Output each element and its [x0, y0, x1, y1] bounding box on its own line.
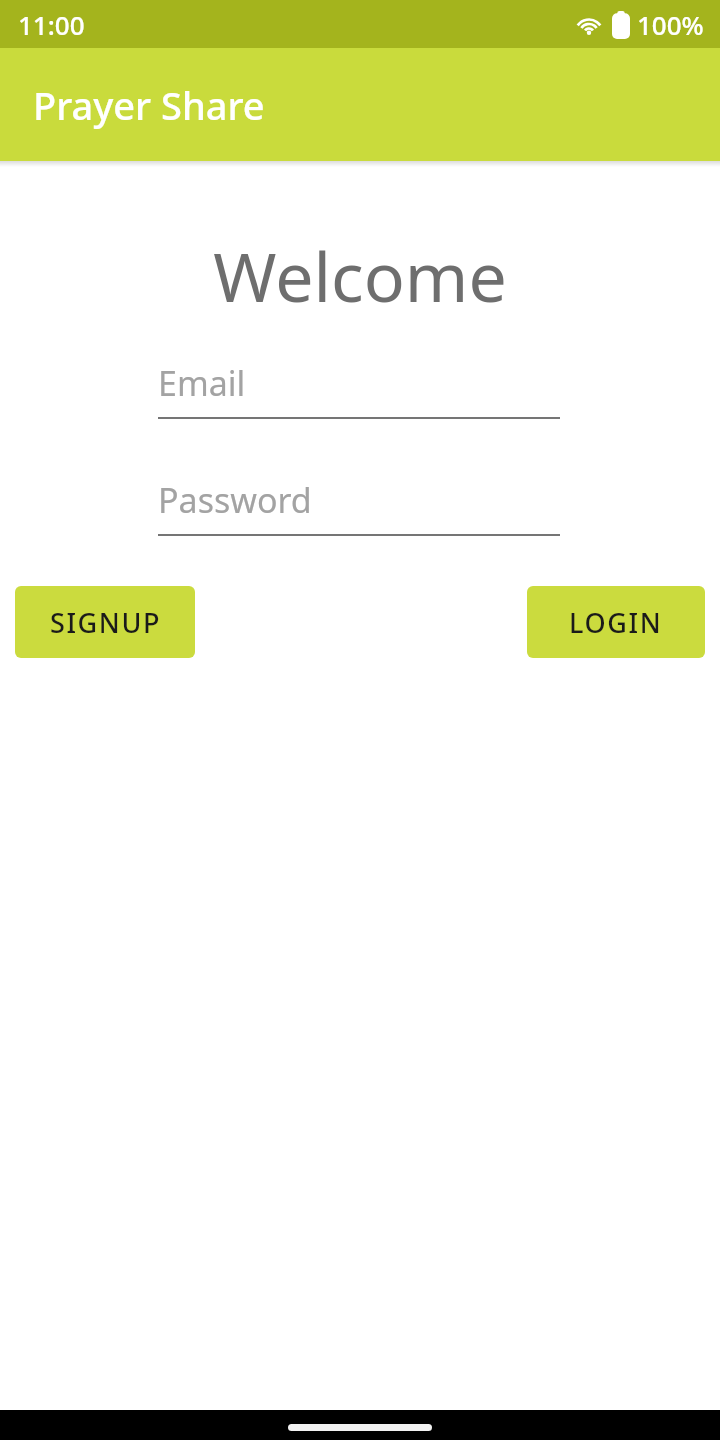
button[interactable]: LOGIN	[527, 586, 705, 658]
staticText: Prayer Share	[33, 79, 265, 131]
staticText: SIGNUP	[50, 604, 161, 641]
staticText: 11:00	[18, 7, 85, 42]
staticText: Email	[158, 360, 246, 406]
staticText: Welcome	[0, 229, 720, 322]
button[interactable]: Email	[158, 360, 560, 419]
button[interactable]: Password	[158, 477, 560, 536]
button[interactable]: SIGNUP	[15, 586, 195, 658]
staticText: LOGIN	[569, 604, 663, 641]
staticText: 100%	[637, 7, 704, 42]
staticText: Password	[158, 477, 312, 523]
